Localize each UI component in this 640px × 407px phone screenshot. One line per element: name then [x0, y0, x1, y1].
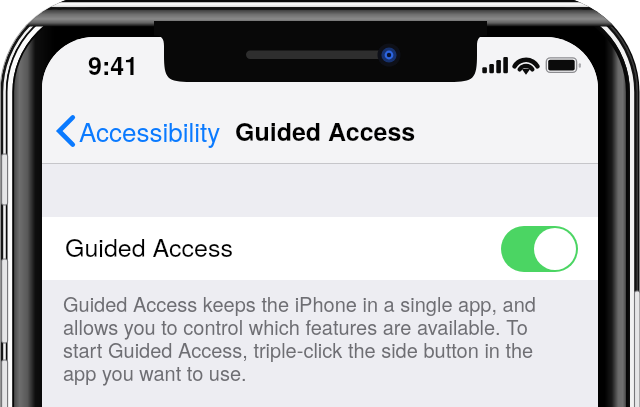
button[interactable]: Guided Access toggle [501, 226, 578, 272]
staticText: Guided Access [65, 228, 233, 264]
staticText: Guided Access [235, 113, 416, 149]
staticText: Accessibility [79, 112, 221, 149]
staticText: Guided Access keeps the iPhone in a sing… [63, 294, 543, 386]
button[interactable]: Accessibility [42, 112, 223, 149]
button[interactable]: Guided Access [42, 217, 598, 280]
staticText: 9:41 [88, 47, 139, 83]
